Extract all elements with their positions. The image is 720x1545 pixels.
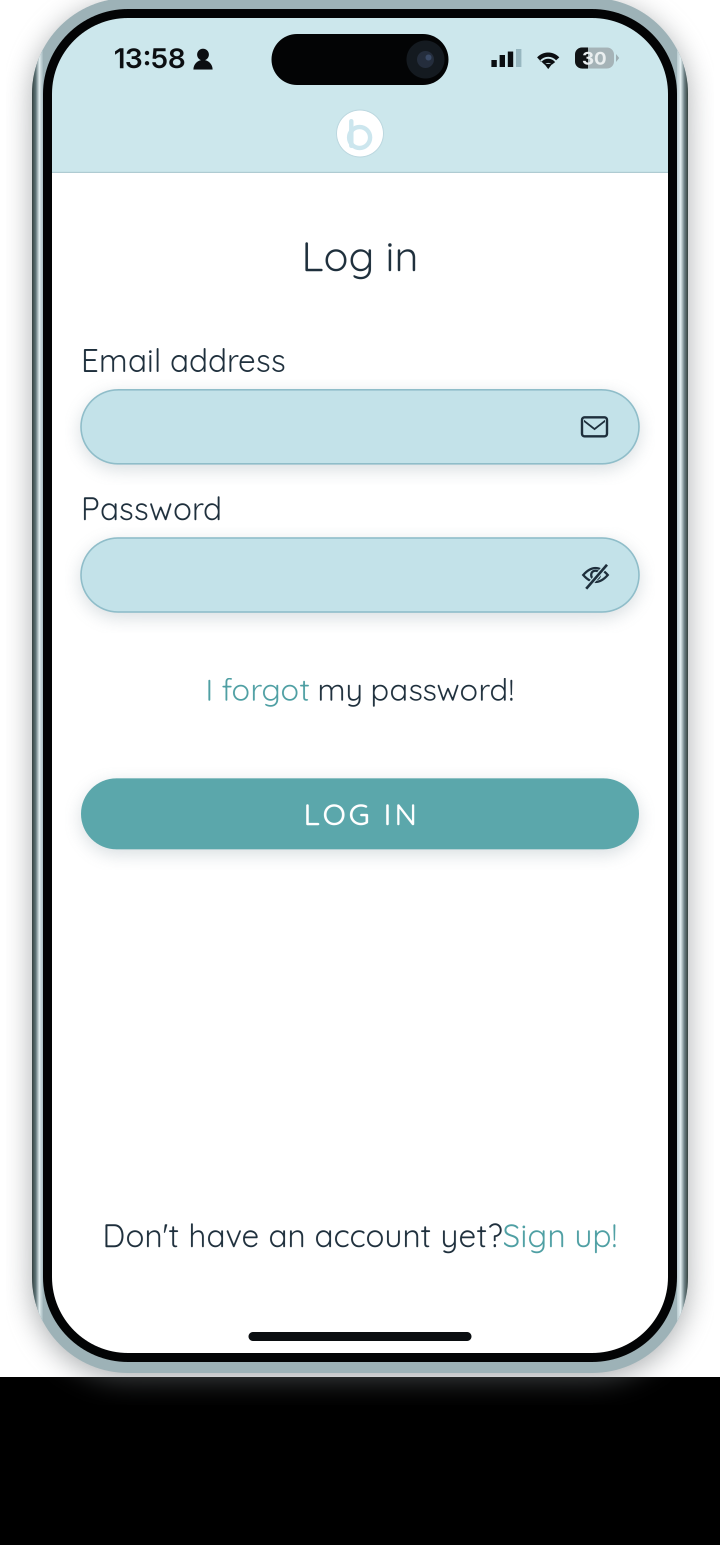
button[interactable]: LOG IN: [81, 778, 639, 849]
staticText: I forgot: [205, 670, 309, 708]
staticText: 13:58: [114, 41, 186, 75]
staticText: Sign up!: [502, 1216, 617, 1255]
button[interactable]: Don't have an account yet?: [102, 1208, 617, 1263]
staticText: my password!: [309, 670, 514, 708]
staticText: Password: [81, 489, 222, 528]
staticText: 30: [582, 47, 607, 69]
staticText: Log in: [301, 230, 418, 282]
staticText: Email address: [81, 341, 286, 380]
staticText: Don't have an account yet?: [102, 1216, 502, 1255]
button[interactable]: I forgot: [189, 661, 530, 717]
staticText: LOG IN: [303, 795, 416, 833]
